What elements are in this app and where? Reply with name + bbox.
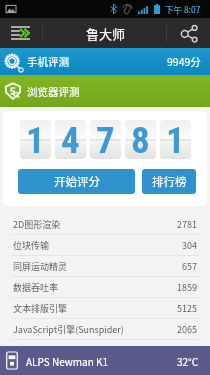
button[interactable]: 文本排版引擎	[0, 298, 210, 318]
button[interactable]: 同屏运动精灵	[0, 256, 210, 276]
button[interactable]: ALPS Newman K1	[0, 346, 210, 375]
button[interactable]: 手机评测	[0, 48, 210, 75]
staticText: 1859	[177, 281, 197, 294]
staticText: 657	[182, 260, 197, 273]
staticText: 开始评分	[54, 173, 100, 190]
staticText: 下午 8:07	[165, 3, 201, 15]
button[interactable]: Share	[167, 18, 210, 48]
staticText: 1	[26, 120, 45, 158]
staticText: 9949分	[167, 54, 201, 69]
button[interactable]: 开始评分	[18, 169, 135, 194]
staticText: 鲁大师	[86, 24, 126, 43]
staticText: 同屏运动精灵	[13, 260, 68, 273]
staticText: 304	[182, 239, 197, 252]
button[interactable]: 数据吞吐率	[0, 277, 210, 297]
staticText: ALPS Newman K1	[26, 354, 109, 368]
staticText: JavaScript引擎(Sunspider)	[13, 323, 124, 336]
staticText: 2065	[177, 323, 197, 336]
staticText: 位块传输	[13, 239, 50, 252]
staticText: 4	[61, 120, 80, 158]
button[interactable]: 2D图形渲染	[0, 214, 210, 234]
staticText: 浏览器评测	[27, 84, 80, 99]
staticText: 5125	[177, 302, 197, 315]
staticText: 2D图形渲染	[13, 218, 61, 231]
button[interactable]: Menu	[0, 18, 42, 48]
staticText: 8	[131, 120, 150, 158]
staticText: 1	[166, 120, 185, 158]
button[interactable]: 浏览器评测	[0, 75, 210, 107]
staticText: 数据吞吐率	[13, 281, 59, 294]
staticText: 排行榜	[152, 173, 187, 190]
staticText: 文本排版引擎	[13, 302, 68, 315]
button[interactable]: 排行榜	[142, 169, 196, 194]
button[interactable]: 位块传输	[0, 235, 210, 255]
button[interactable]: JavaScript引擎(Sunspider)	[0, 319, 210, 339]
staticText: 7	[96, 120, 115, 158]
staticText: 2781	[177, 218, 197, 231]
staticText: 32°C	[177, 354, 199, 368]
staticText: 手机评测	[27, 54, 69, 69]
